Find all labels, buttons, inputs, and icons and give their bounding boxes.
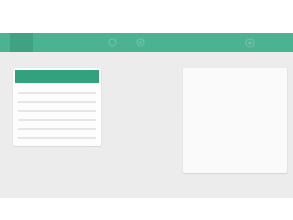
button[interactable] — [13, 68, 101, 146]
button[interactable]: Redo — [133, 33, 147, 52]
button[interactable]: Settings — [243, 33, 257, 52]
button[interactable]: Undo — [105, 33, 119, 52]
